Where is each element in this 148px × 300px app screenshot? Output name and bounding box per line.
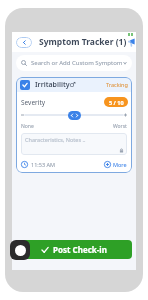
staticText: Symptom Tracker (1) — [39, 36, 127, 48]
button[interactable]: Back — [16, 37, 32, 48]
staticText: Post Check-in — [53, 244, 107, 255]
staticText: Tracking — [106, 81, 128, 88]
button[interactable]: Characteristics, Notes .. — [21, 133, 127, 155]
staticText: Characteristics, Notes .. — [25, 136, 86, 143]
staticText: Search or Add Custom Symptom — [31, 59, 123, 67]
staticText: Worst — [113, 123, 127, 130]
staticText: Severity — [21, 98, 46, 107]
button[interactable]: More — [104, 161, 127, 168]
button[interactable]: Irritability♂ — [16, 77, 132, 92]
button[interactable]: Search or Add Custom Symptom — [16, 55, 132, 71]
staticText: More — [113, 161, 127, 168]
staticText: None — [21, 123, 34, 130]
button[interactable]: Severity slider — [68, 111, 81, 120]
staticText: Irritability♂ — [35, 80, 76, 90]
button[interactable]: Post Check-in — [16, 240, 132, 259]
button[interactable]: 5 / 10 — [104, 97, 128, 107]
staticText: 5 / 10 — [109, 99, 124, 106]
staticText: 11:53 AM — [31, 161, 55, 168]
button[interactable]: 11:53 AM — [21, 161, 55, 168]
button[interactable]: Announcements — [127, 35, 136, 49]
